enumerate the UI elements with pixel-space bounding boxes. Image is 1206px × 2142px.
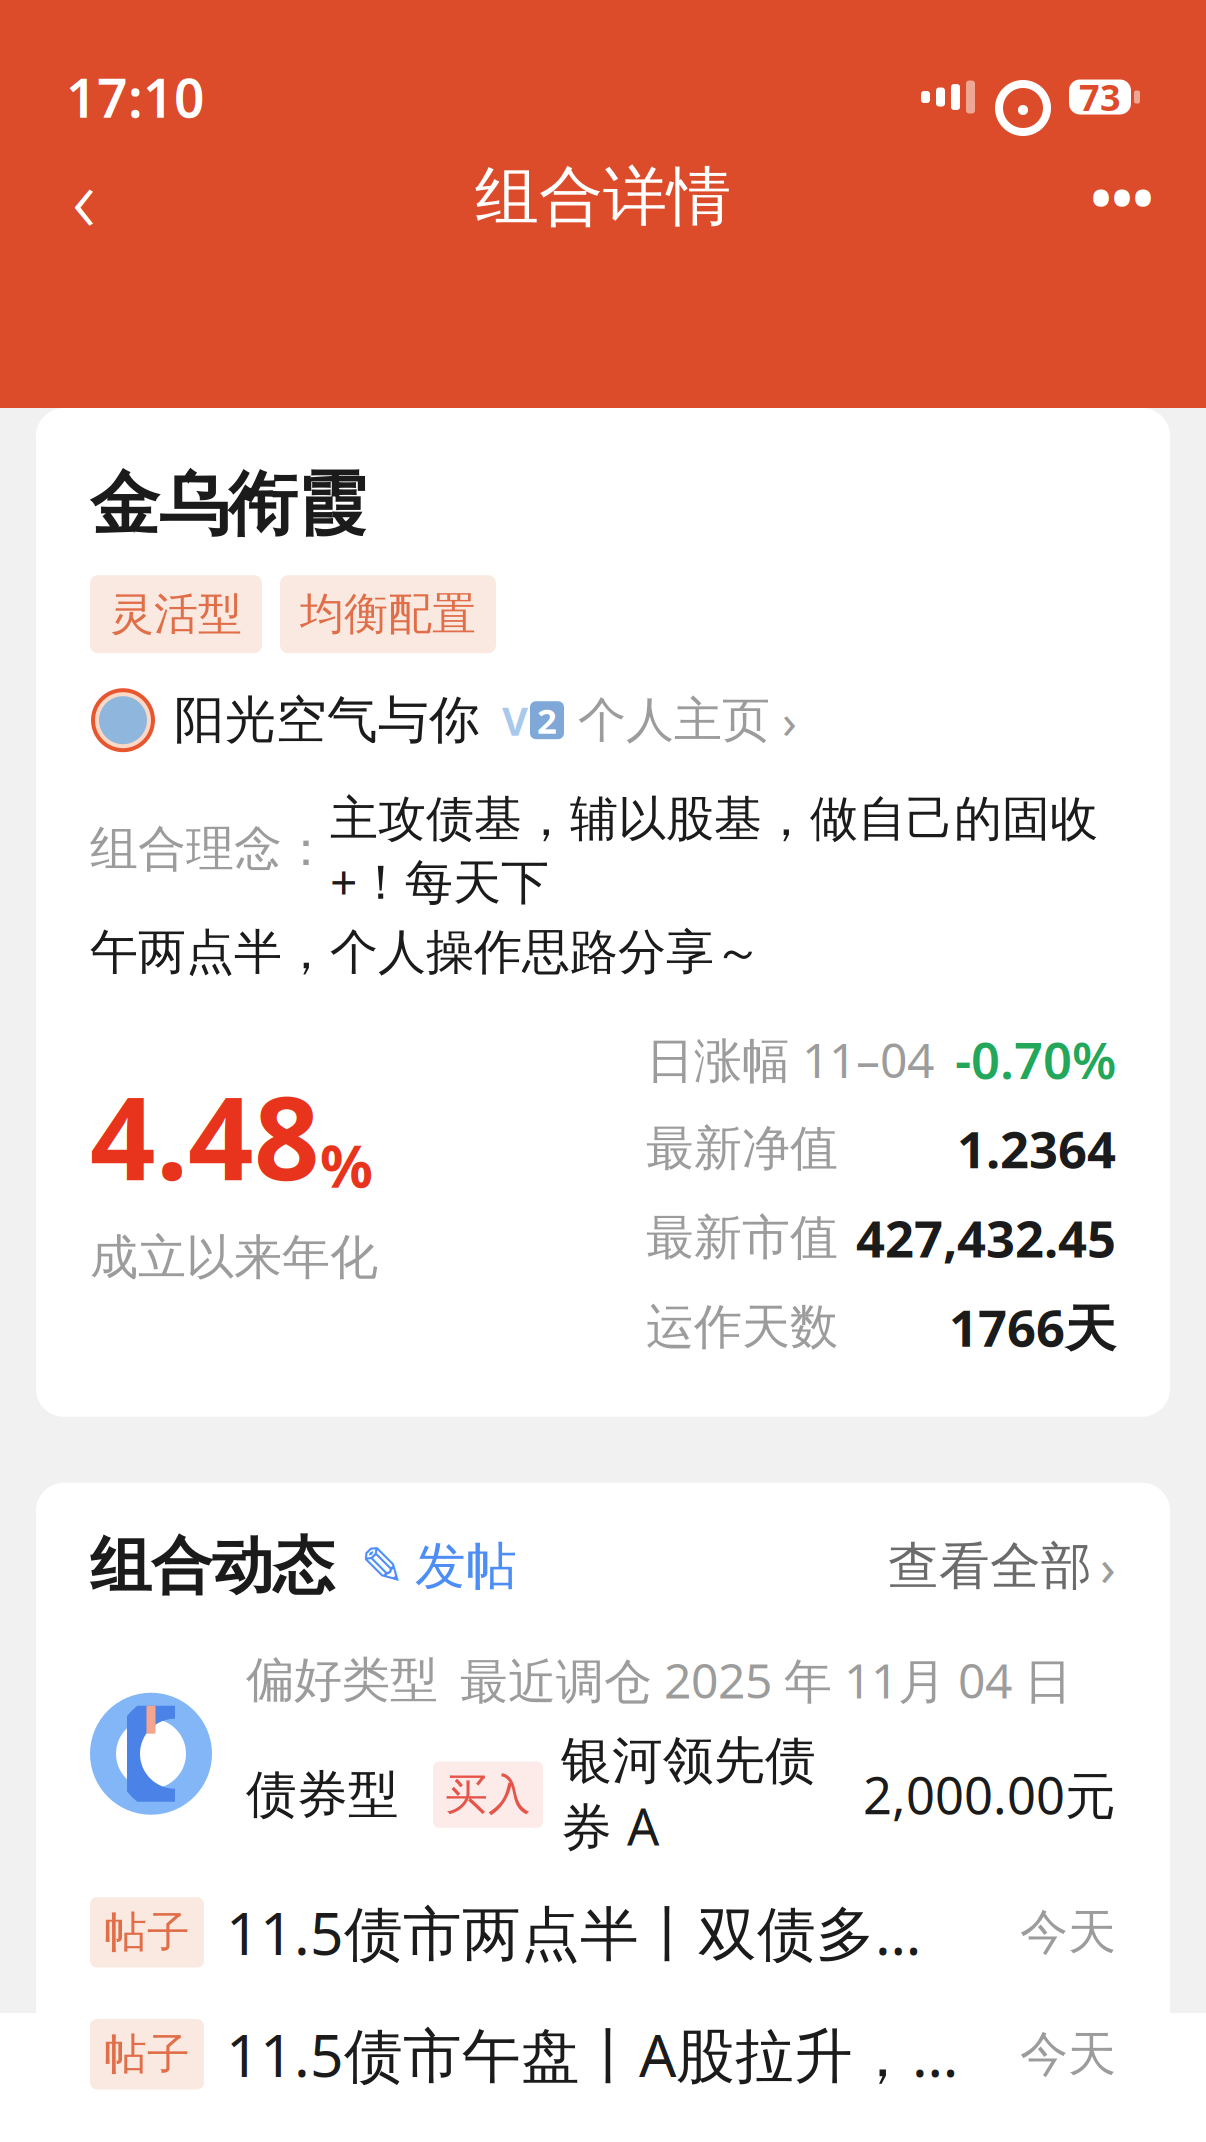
button[interactable]: 阳光空气与你 [90, 687, 1116, 753]
staticText: 买入 [445, 1768, 531, 1821]
button[interactable]: 更多 [1080, 155, 1164, 239]
staticText: 运作天数 [646, 1298, 838, 1357]
staticText: 偏好类型 [246, 1650, 438, 1709]
staticText: 金乌衔霞 [90, 462, 366, 547]
staticText: › [770, 688, 797, 752]
staticText: 阳光空气与你 [174, 689, 480, 751]
staticText: -0.70% [955, 1026, 1116, 1093]
staticText: 发帖 [415, 1535, 517, 1597]
staticText: 最新市值 [646, 1208, 838, 1267]
staticText: ✎ [360, 1536, 405, 1597]
staticText: 最近调仓 2025 年 11月 04 日 [460, 1648, 1072, 1712]
staticText: 2,000.00元 [863, 1761, 1116, 1828]
staticText: 17:10 [66, 62, 205, 132]
button[interactable]: 返回 [42, 155, 126, 239]
staticText: V [502, 694, 528, 747]
staticText: 427,432.45 [856, 1204, 1116, 1271]
button[interactable]: 查看全部 [888, 1533, 1116, 1600]
staticText: 灵活型 [110, 587, 242, 641]
staticText: 1766天 [949, 1293, 1116, 1361]
staticText: 个人主页 [578, 691, 770, 750]
staticText: 11.5债市午盘丨A股拉升，… [226, 2015, 958, 2093]
staticText: 日涨幅 11–04 [646, 1027, 934, 1091]
staticText: 成立以来年化 [90, 1228, 378, 1287]
button[interactable]: 帖子 [90, 2015, 1116, 2093]
staticText: 今天 [1020, 1903, 1116, 1962]
staticText: 均衡配置 [300, 587, 476, 641]
staticText: 帖子 [104, 2028, 190, 2080]
staticText: 今天 [1020, 2025, 1116, 2084]
button[interactable]: 帖子 [90, 1893, 1116, 1971]
staticText: 2 [537, 697, 557, 743]
staticText: 11.5债市两点半丨双债多… [226, 1893, 921, 1971]
staticText: % [320, 1126, 373, 1204]
button[interactable]: 偏好类型 [90, 1648, 1116, 1859]
staticText: 73 [1079, 73, 1121, 121]
staticText: 1.2364 [957, 1115, 1116, 1182]
staticText: › [1100, 1533, 1116, 1600]
staticText: 债券型 [246, 1763, 399, 1826]
staticText: 组合详情 [475, 158, 731, 236]
button[interactable]: ✎ [360, 1535, 517, 1597]
staticText: 银河领先债券 A [561, 1730, 816, 1859]
staticText: 最新净值 [646, 1119, 838, 1178]
staticText: 午两点半，个人操作思路分享～ [90, 923, 762, 982]
staticText: 组合动态 [90, 1529, 334, 1604]
staticText: 查看全部 [888, 1535, 1092, 1597]
staticText: 组合理念： [90, 819, 330, 878]
staticText: ••• [1090, 160, 1153, 234]
staticText: ‹ [72, 137, 96, 257]
staticText: 帖子 [104, 1906, 190, 1958]
staticText: 4.48 [90, 1060, 320, 1212]
staticText: 主攻债基，辅以股基，做自己的固收 +！每天下 [330, 785, 1098, 913]
